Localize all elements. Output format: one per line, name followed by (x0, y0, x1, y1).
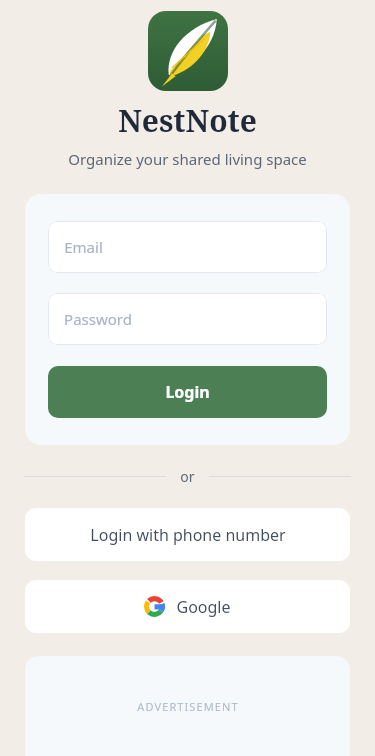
staticText: Google (176, 596, 231, 618)
button[interactable]: Login (48, 366, 327, 418)
staticText: Organize your shared living space (68, 149, 307, 169)
other: Google logo (144, 596, 165, 617)
staticText: ADVERTISEMENT (137, 699, 239, 714)
staticText: Email (64, 237, 103, 257)
staticText: Password (64, 309, 132, 329)
staticText: Login (165, 381, 210, 403)
button[interactable]: Email (48, 221, 327, 273)
button[interactable]: Google logo (25, 580, 350, 633)
staticText: NestNote (118, 100, 257, 141)
staticText: or (180, 467, 195, 486)
button[interactable]: Password (48, 293, 327, 345)
staticText: Login with phone number (90, 524, 286, 546)
button[interactable]: Login with phone number (25, 508, 350, 561)
